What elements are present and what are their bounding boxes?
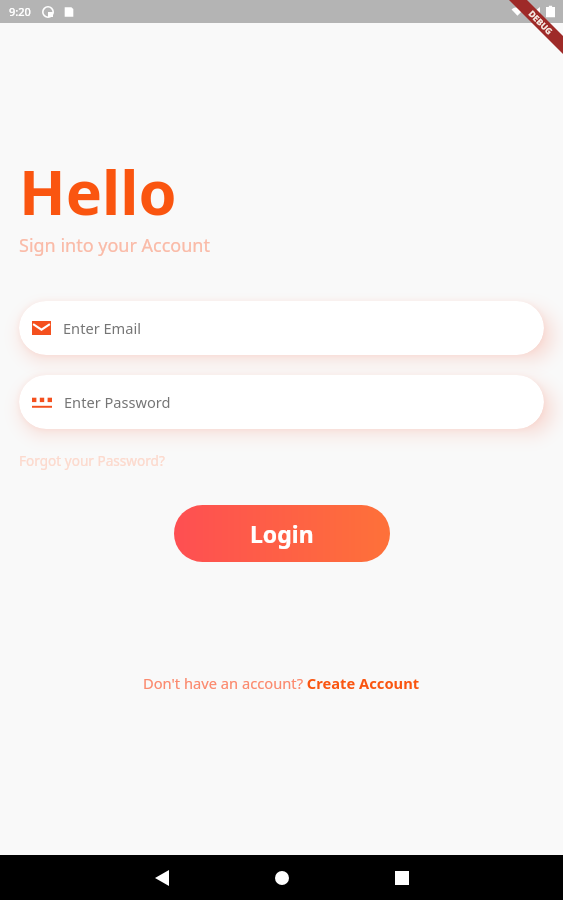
staticText: 9:20 bbox=[9, 4, 31, 19]
staticText: Hello bbox=[19, 150, 177, 233]
button[interactable]: Recents bbox=[342, 855, 462, 900]
button[interactable]: Forgot your Password? bbox=[19, 451, 165, 470]
button[interactable]: Back bbox=[102, 855, 222, 900]
staticText: DEBUG bbox=[526, 8, 555, 38]
staticText: Sign into your Account bbox=[19, 233, 210, 258]
button[interactable]: Don't have an account? Create Account bbox=[143, 673, 420, 693]
button[interactable]: Login bbox=[174, 505, 390, 562]
button[interactable]: Enter Password bbox=[19, 375, 544, 429]
button[interactable]: Home bbox=[222, 855, 342, 900]
staticText: Enter Email bbox=[63, 318, 141, 338]
staticText: Enter Password bbox=[64, 392, 171, 412]
button[interactable]: Enter Email bbox=[19, 301, 544, 355]
staticText: Don't have an account? Create Account bbox=[143, 673, 420, 693]
staticText: Login bbox=[250, 518, 314, 549]
